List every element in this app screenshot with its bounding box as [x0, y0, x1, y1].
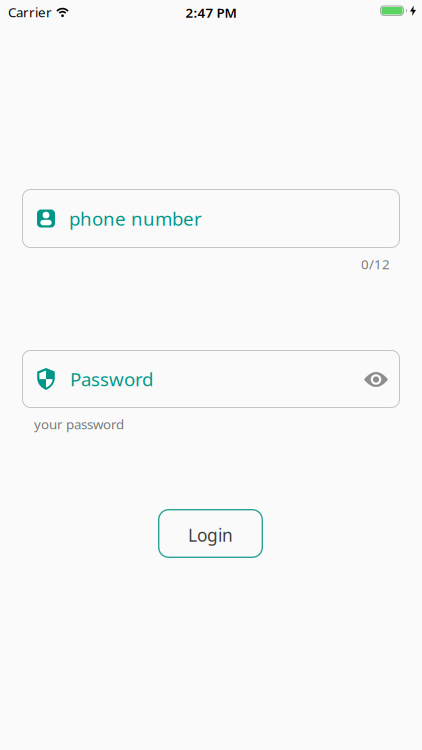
button[interactable]: Password [22, 350, 400, 408]
staticText: your password [34, 415, 124, 433]
staticText: Password [70, 367, 153, 391]
staticText: Carrier [8, 3, 52, 21]
staticText: phone number [69, 206, 202, 231]
staticText: 2:47 PM [185, 4, 236, 21]
button[interactable]: Show password [356, 359, 396, 399]
button[interactable]: Login [158, 509, 263, 558]
staticText: Login [188, 523, 233, 546]
button[interactable]: phone number [22, 189, 400, 248]
staticText: 0/12 [361, 255, 390, 273]
